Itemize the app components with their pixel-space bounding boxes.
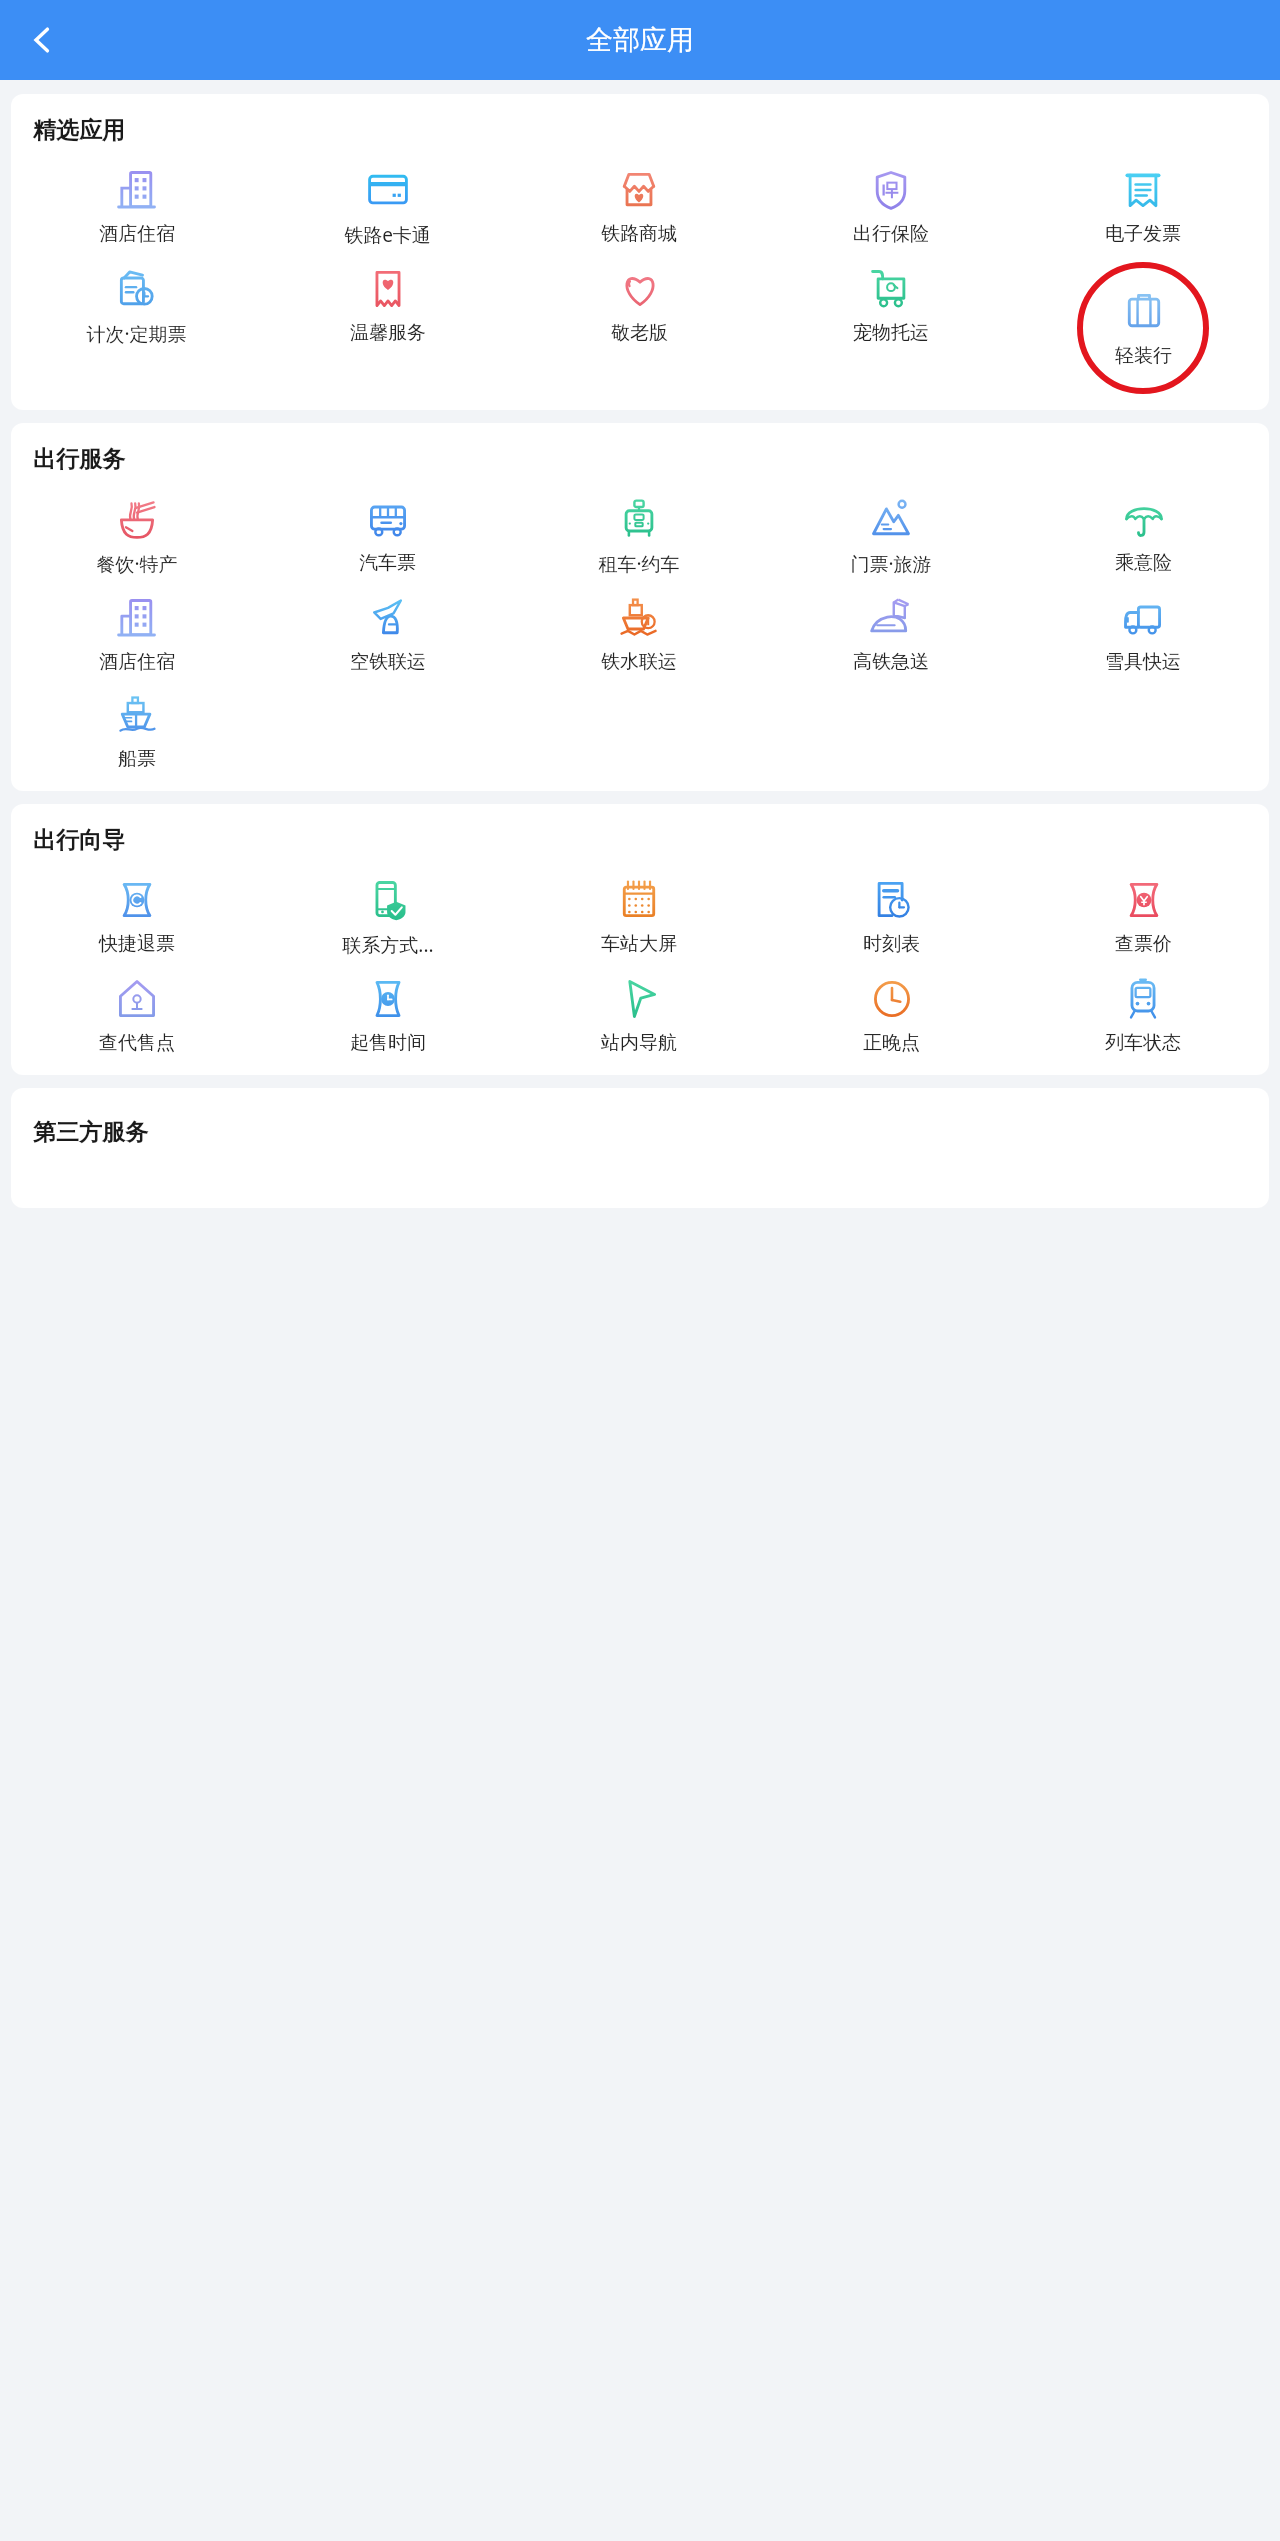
button[interactable]: 敬老版 xyxy=(607,262,672,349)
staticText: 铁路商城 xyxy=(601,222,677,246)
button[interactable]: 空铁联运 xyxy=(346,591,430,678)
staticText: 时刻表 xyxy=(863,932,920,956)
staticText: 起售时间 xyxy=(350,1031,426,1055)
staticText: 空铁联运 xyxy=(350,650,426,674)
staticText: 出行保险 xyxy=(853,222,929,246)
staticText: 门票·旅游 xyxy=(850,551,932,577)
staticText: 电子发票 xyxy=(1105,222,1181,246)
button[interactable]: Back xyxy=(14,12,70,68)
button[interactable]: 时刻表 xyxy=(859,873,924,960)
staticText: 出行服务 xyxy=(33,445,125,474)
staticText: 宠物托运 xyxy=(853,321,929,345)
staticText: 列车状态 xyxy=(1105,1031,1181,1055)
button[interactable]: 租车·约车 xyxy=(594,492,684,581)
button[interactable]: 门票·旅游 xyxy=(846,492,936,581)
staticText: 快捷退票 xyxy=(99,932,175,956)
staticText: 全部应用 xyxy=(586,23,694,57)
button[interactable]: 铁路商城 xyxy=(597,163,681,250)
button[interactable]: 汽车票 xyxy=(355,492,420,579)
button[interactable]: 查票价 xyxy=(1111,873,1176,960)
staticText: 第三方服务 xyxy=(33,1118,148,1147)
staticText: 餐饮·特产 xyxy=(96,551,178,577)
staticText: 雪具快运 xyxy=(1105,650,1181,674)
button[interactable]: 列车状态 xyxy=(1101,972,1185,1059)
button[interactable]: 电子发票 xyxy=(1101,163,1185,250)
staticText: 酒店住宿 xyxy=(99,650,175,674)
staticText: 温馨服务 xyxy=(350,321,426,345)
button[interactable]: 温馨服务 xyxy=(346,262,430,349)
staticText: 联系方式... xyxy=(342,932,434,958)
button[interactable]: 宠物托运 xyxy=(849,262,933,349)
staticText: 车站大屏 xyxy=(601,932,677,956)
button[interactable]: 乘意险 xyxy=(1111,492,1176,579)
staticText: 汽车票 xyxy=(359,551,416,575)
button[interactable]: 快捷退票 xyxy=(95,873,179,960)
staticText: 酒店住宿 xyxy=(99,222,175,246)
staticText: 计次·定期票 xyxy=(86,321,187,347)
button[interactable]: 轻装行 xyxy=(1111,285,1176,372)
button[interactable]: 铁水联运 xyxy=(597,591,681,678)
staticText: 敬老版 xyxy=(611,321,668,345)
button[interactable]: 起售时间 xyxy=(346,972,430,1059)
button[interactable]: 查代售点 xyxy=(95,972,179,1059)
button[interactable]: 联系方式... xyxy=(338,873,438,962)
staticText: 铁路e卡通 xyxy=(344,222,431,248)
staticText: 租车·约车 xyxy=(598,551,680,577)
button[interactable]: 酒店住宿 xyxy=(95,163,179,250)
button[interactable]: 船票 xyxy=(110,688,164,775)
button[interactable]: 酒店住宿 xyxy=(95,591,179,678)
staticText: 乘意险 xyxy=(1115,551,1172,575)
staticText: 查代售点 xyxy=(99,1031,175,1055)
staticText: 高铁急送 xyxy=(853,650,929,674)
button[interactable]: 车站大屏 xyxy=(597,873,681,960)
staticText: 出行向导 xyxy=(33,826,125,855)
staticText: 船票 xyxy=(118,747,156,771)
button[interactable]: 高铁急送 xyxy=(849,591,933,678)
staticText: 正晚点 xyxy=(863,1031,920,1055)
staticText: 轻装行 xyxy=(1115,344,1172,368)
button[interactable]: 计次·定期票 xyxy=(82,262,191,351)
button[interactable]: 正晚点 xyxy=(859,972,924,1059)
staticText: 铁水联运 xyxy=(601,650,677,674)
button[interactable]: 雪具快运 xyxy=(1101,591,1185,678)
button[interactable]: 站内导航 xyxy=(597,972,681,1059)
button[interactable]: 出行保险 xyxy=(849,163,933,250)
button[interactable]: 铁路e卡通 xyxy=(340,163,435,252)
staticText: 精选应用 xyxy=(33,116,125,145)
button[interactable]: 餐饮·特产 xyxy=(92,492,182,581)
staticText: 站内导航 xyxy=(601,1031,677,1055)
staticText: 查票价 xyxy=(1115,932,1172,956)
